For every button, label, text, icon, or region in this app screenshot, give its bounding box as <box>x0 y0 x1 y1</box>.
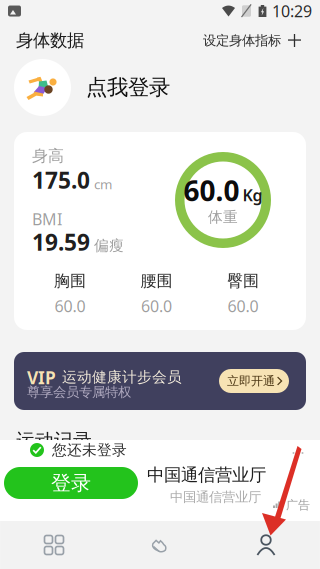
button[interactable]: 设定身体指标 <box>203 24 301 57</box>
staticText: 60.0 <box>141 295 172 317</box>
staticText: 您还未登录 <box>52 441 127 459</box>
staticText: 60.0 <box>227 295 258 317</box>
staticText: 10:29 <box>272 0 312 22</box>
staticText: 60.0 <box>54 295 85 317</box>
staticText: 运动记录 <box>16 429 92 452</box>
staticText: 60.0 <box>183 172 239 209</box>
staticText: 立即开通 <box>227 374 275 388</box>
staticText: cm <box>94 175 112 193</box>
staticText: BMI <box>32 208 62 230</box>
staticText: 中国通信营业厅 <box>147 464 266 486</box>
button[interactable]: 我的 <box>213 521 319 569</box>
staticText: 运动健康计步会员 <box>62 368 182 386</box>
staticText: 175.0 <box>32 165 90 195</box>
button[interactable]: 首页 <box>1 521 107 569</box>
button[interactable]: 点我登录 <box>0 59 320 116</box>
staticText: 体重 <box>208 208 238 226</box>
staticText: 偏瘦 <box>94 236 124 254</box>
staticText: 19.59 <box>32 227 90 257</box>
staticText: 尊享会员专属特权 <box>27 384 131 400</box>
staticText: 点我登录 <box>86 74 170 101</box>
button[interactable]: 运动 <box>107 521 213 569</box>
staticText: 广告 <box>286 498 310 512</box>
staticText: 胸围 <box>54 271 86 291</box>
button[interactable]: VIP <box>0 352 320 410</box>
staticText: VIP <box>27 366 56 389</box>
button[interactable]: 更多 <box>286 446 310 460</box>
staticText: 登录 <box>51 471 91 495</box>
staticText: 中国通信营业厅 <box>170 489 261 505</box>
staticText: 身高 <box>32 146 64 166</box>
button[interactable]: 登录 <box>4 467 138 499</box>
staticText: 设定身体指标 <box>203 32 281 49</box>
staticText: Kg <box>242 184 262 206</box>
staticText: 腰围 <box>140 271 172 291</box>
staticText: 臀围 <box>227 271 259 291</box>
staticText: 身体数据 <box>16 30 84 51</box>
